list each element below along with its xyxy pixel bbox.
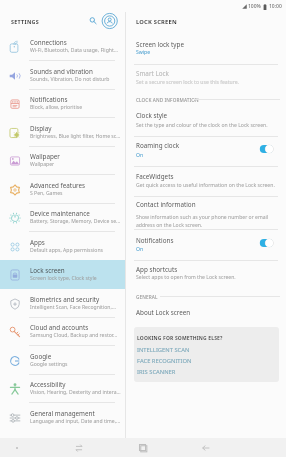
staticText: Roaming clock [136,141,180,150]
staticText: On [136,152,280,159]
button[interactable]: Back [190,438,222,457]
staticText: Wallpaper [30,152,60,161]
staticText: Block, allow, prioritise [30,104,83,111]
staticText: Accessibility [30,380,66,389]
staticText: Screen lock type [136,40,184,49]
button[interactable]: Sounds and vibration [0,61,125,90]
button[interactable]: Notifications [0,89,125,118]
button[interactable] [126,64,286,90]
staticText: GENERAL [136,294,158,300]
button[interactable] [126,136,286,166]
button[interactable]: Advanced features [0,175,125,204]
staticText: Select apps to open from the Lock screen… [136,274,280,281]
button[interactable]: Cloud and accounts [0,317,125,346]
staticText: Biometrics and security [30,295,100,304]
staticText: Google [30,352,52,361]
staticText: Clock style [136,111,168,120]
button[interactable] [126,196,286,229]
button[interactable]: Home [127,438,159,457]
button[interactable]: Menu [1,438,33,457]
staticText: Show information such as your phone numb… [136,214,280,228]
staticText: Lock screen [30,266,65,275]
staticText: INTELLIGENT SCAN [137,346,190,354]
staticText: Wallpaper [30,161,55,168]
button[interactable] [126,32,286,64]
button[interactable] [126,166,286,196]
button[interactable] [126,229,286,260]
button[interactable]: Toggle Roaming clock [257,143,277,155]
staticText: App shortcuts [136,265,178,274]
button[interactable]: General management [0,403,125,432]
staticText: Swipe [136,49,280,56]
button[interactable]: Device maintenance [0,203,125,232]
staticText: Intelligent Scan, Face Recognition,... [30,304,116,311]
button[interactable]: Accessibility [0,374,125,403]
staticText: Wi-Fi, Bluetooth, Data usage, Flight... [30,47,118,54]
staticText: LOCK SCREEN [136,18,177,26]
button[interactable]: Google [0,346,125,375]
staticText: FaceWidgets [136,172,174,181]
staticText: Contact information [136,200,196,209]
staticText: Advanced features [30,181,86,190]
staticText: CLOCK AND INFORMATION [136,97,199,103]
button[interactable]: Display [0,118,125,147]
staticText: On [136,246,280,253]
button[interactable] [126,106,286,136]
button[interactable]: Biometrics and security [0,289,125,318]
staticText: Screen lock type, Clock style [30,275,97,282]
staticText: IRIS SCANNER [137,368,176,376]
staticText: Sounds, Vibration, Do not disturb [30,76,110,83]
staticText: 100% [248,3,261,10]
button[interactable]: Toggle Notifications [257,237,277,249]
staticText: Battery, Storage, Memory, Device se... [30,218,121,225]
staticText: Set the type and colour of the clock on … [136,122,280,129]
staticText: LOOKING FOR SOMETHING ELSE? [137,335,223,342]
button[interactable]: Wallpaper [0,146,125,175]
button[interactable]: Connections [0,32,125,61]
staticText: Default apps, App permissions [30,247,103,254]
button[interactable] [126,260,286,287]
button[interactable]: Account [101,13,119,31]
staticText: Apps [30,238,45,247]
staticText: Cloud and accounts [30,323,89,332]
staticText: Display [30,124,52,133]
staticText: Connections [30,38,67,47]
staticText: Samsung Cloud, Backup and restor... [30,332,118,339]
staticText: Language and input, Date and time,... [30,418,121,425]
button[interactable]: LOOKING FOR SOMETHING ELSE? [134,327,279,382]
staticText: S Pen, Games [30,190,63,197]
staticText: Set a secure screen lock to use this fea… [136,79,280,86]
staticText: Brightness, Blue light filter, Home sc..… [30,133,121,140]
staticText: Vision, Hearing, Dexterity and intera... [30,389,121,396]
button[interactable]: Apps [0,232,125,261]
staticText: Notifications [136,236,174,245]
button[interactable]: Search [85,13,99,27]
staticText: About Lock screen [136,308,191,317]
staticText: Notifications [30,95,68,104]
staticText: Sounds and vibration [30,67,93,76]
button[interactable] [126,303,286,322]
staticText: Google settings [30,361,68,368]
staticText: 10:00 [269,3,282,10]
staticText: Get quick access to useful information o… [136,182,280,189]
staticText: FACE RECOGNITION [137,357,192,365]
staticText: SETTINGS [11,18,40,25]
staticText: Smart Lock [136,69,169,78]
button[interactable]: Recents [63,438,95,457]
button[interactable]: Lock screen [0,260,125,289]
staticText: General management [30,409,95,418]
staticText: Device maintenance [30,209,90,218]
